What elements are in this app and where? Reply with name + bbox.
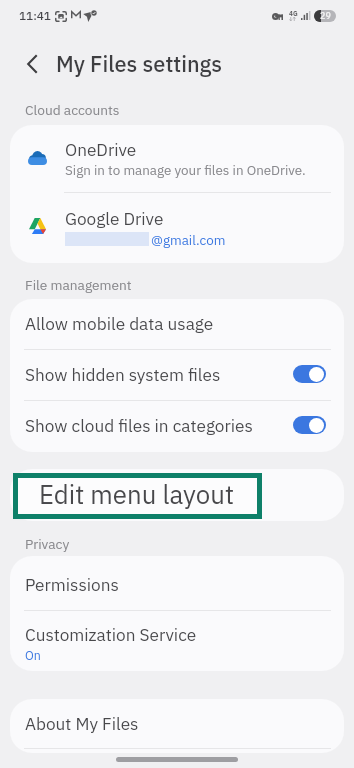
- staticText: 11:41: [19, 8, 51, 23]
- button[interactable]: [10, 400, 344, 452]
- staticText: On: [25, 647, 41, 663]
- staticText: Permissions: [25, 573, 119, 595]
- staticText: Allow mobile data usage: [25, 312, 214, 334]
- button[interactable]: [10, 125, 344, 192]
- button[interactable]: [10, 192, 344, 263]
- staticText: Privacy: [25, 535, 70, 553]
- staticText: My Files settings: [56, 50, 223, 78]
- staticText: Cloud accounts: [25, 101, 120, 119]
- staticText: Edit menu layout: [39, 478, 234, 512]
- button[interactable]: [10, 299, 344, 349]
- button[interactable]: [10, 349, 344, 400]
- staticText: File management: [25, 276, 132, 294]
- button[interactable]: [10, 610, 344, 671]
- button[interactable]: [18, 478, 257, 514]
- staticText: About My Files: [25, 712, 139, 734]
- staticText: Show cloud files in categories: [25, 414, 253, 436]
- button[interactable]: [10, 699, 344, 748]
- staticText: Sign in to manage your files in OneDrive…: [65, 161, 306, 178]
- staticText: 29: [320, 10, 331, 22]
- staticText: OneDrive: [65, 138, 137, 160]
- button[interactable]: [10, 556, 344, 610]
- button[interactable]: Back: [14, 46, 50, 82]
- staticText: 4G: [289, 9, 298, 17]
- staticText: Google Drive: [65, 207, 164, 229]
- staticText: Show hidden system files: [25, 363, 221, 385]
- staticText: Customization Service: [25, 623, 197, 645]
- button[interactable]: Toggle: [293, 416, 326, 434]
- staticText: @gmail.com: [151, 231, 226, 248]
- button[interactable]: Toggle: [293, 365, 326, 383]
